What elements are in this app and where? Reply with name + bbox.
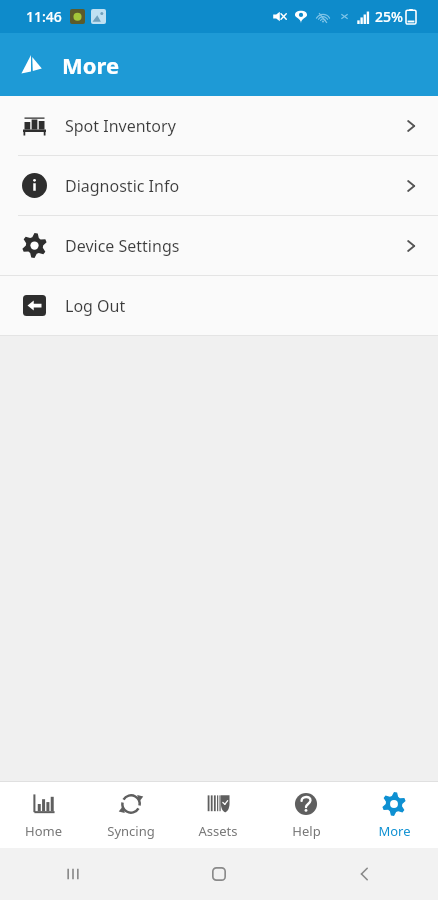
staticText: More — [62, 50, 120, 80]
button[interactable]: Syncing — [87, 782, 174, 848]
button[interactable]: Help — [262, 782, 350, 848]
staticText: More — [378, 822, 411, 840]
button[interactable]: Device Settings — [0, 216, 438, 275]
staticText: Diagnostic Info — [65, 175, 402, 197]
staticText: 11:46 — [26, 7, 62, 26]
staticText: Log Out — [65, 295, 420, 317]
button[interactable]: Back — [292, 848, 438, 900]
button[interactable]: Log Out — [0, 276, 438, 335]
button[interactable]: Home — [0, 782, 87, 848]
button[interactable]: Recents — [0, 848, 146, 900]
button[interactable]: Assets — [174, 782, 262, 848]
staticText: Syncing — [107, 822, 155, 840]
staticText: Spot Inventory — [65, 115, 402, 137]
staticText: Assets — [198, 822, 238, 840]
button[interactable]: Spot Inventory — [0, 96, 438, 155]
staticText: Home — [25, 822, 62, 840]
staticText: Device Settings — [65, 235, 402, 257]
staticText: 25% — [375, 7, 403, 26]
button[interactable]: More — [350, 782, 438, 848]
button[interactable]: Diagnostic Info — [0, 156, 438, 215]
staticText: Help — [292, 822, 321, 840]
button[interactable]: Home — [146, 848, 292, 900]
